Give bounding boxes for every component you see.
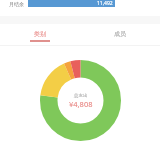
staticText: 类别 <box>34 30 46 38</box>
staticText: 成员 <box>114 30 126 38</box>
button[interactable]: 类别 <box>0 24 80 45</box>
staticText: ¥4,808 <box>69 99 93 109</box>
staticText: 11,492 <box>97 0 113 7</box>
button[interactable]: 成员 <box>80 24 160 45</box>
staticText: 月结余 <box>9 1 24 7</box>
staticText: 总支出 <box>74 93 88 99</box>
